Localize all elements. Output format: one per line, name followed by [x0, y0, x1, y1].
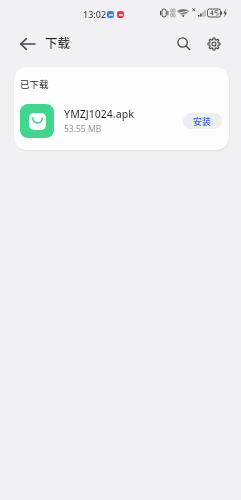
button[interactable]: Search — [169, 29, 198, 58]
staticText: 安装 — [193, 115, 212, 128]
button[interactable]: 安装 — [183, 113, 222, 129]
staticText: 下载 — [45, 33, 71, 51]
staticText: YMZJ1024.apk — [64, 107, 135, 121]
button[interactable]: Settings — [199, 29, 228, 58]
button[interactable]: YMZJ1024.apk — [14, 99, 229, 143]
button[interactable]: Back — [13, 29, 43, 59]
staticText: 53.55 MB — [64, 123, 102, 135]
staticText: 已下载 — [20, 77, 49, 91]
staticText: 13:02 — [83, 8, 107, 20]
